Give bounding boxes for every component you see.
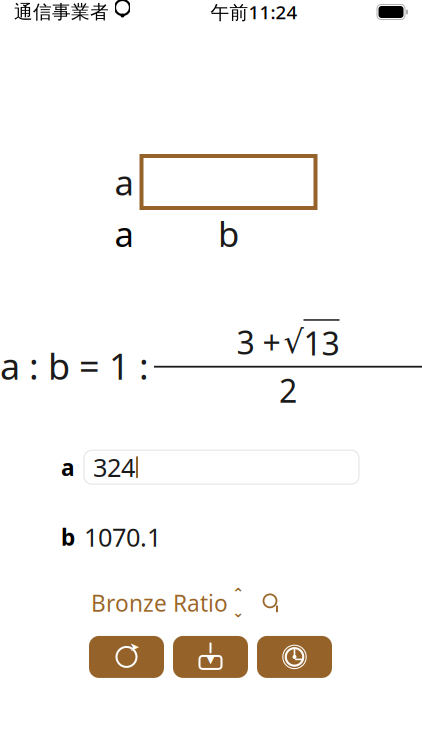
staticText: 通信事業者 — [14, 0, 109, 23]
staticText: √ — [283, 323, 303, 361]
staticText: ⌃ — [232, 585, 244, 602]
staticText: a : b = 1 : — [0, 341, 149, 390]
staticText: 1070.1 — [84, 520, 161, 554]
button[interactable]: Settings — [257, 636, 332, 678]
staticText: ▼ — [206, 653, 214, 665]
staticText: ⌄ — [232, 604, 244, 620]
staticText: a — [61, 452, 75, 482]
button[interactable]: Recalculate — [89, 636, 164, 678]
staticText: Bronze Ratio — [91, 588, 228, 618]
button[interactable]: Bronze Ratio — [91, 588, 243, 618]
staticText: 3 + — [236, 320, 280, 364]
button[interactable]: 324 — [84, 450, 359, 484]
staticText: b — [61, 522, 75, 552]
staticText: a — [114, 158, 133, 206]
staticText: 午前11:24 — [210, 0, 297, 24]
staticText: 324 — [93, 450, 135, 484]
staticText: 13 — [303, 321, 339, 365]
staticText: a — [114, 210, 133, 257]
button[interactable]: Save — [173, 636, 248, 678]
staticText: b — [218, 210, 239, 257]
button[interactable]: Search — [261, 592, 283, 614]
staticText: ➤ — [129, 640, 139, 654]
staticText: 2 — [279, 369, 297, 412]
